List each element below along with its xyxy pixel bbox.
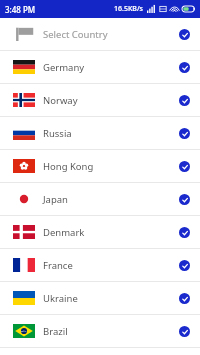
button[interactable]: Hong Kong	[0, 150, 200, 182]
staticText: Japan	[43, 193, 179, 206]
other: Selected Japan	[179, 194, 190, 205]
other: Selected Brazil	[179, 326, 190, 337]
staticText: 16.5KB/s	[114, 4, 144, 14]
staticText: Denmark	[43, 226, 179, 239]
other: Selected Russia	[179, 128, 190, 139]
button[interactable]: Russia	[0, 117, 200, 149]
other: Selected Ukraine	[179, 293, 190, 304]
button[interactable]: Ukraine	[0, 282, 200, 314]
button[interactable]: France	[0, 249, 200, 281]
other: Selected Hong Kong	[179, 161, 190, 172]
other: Selected Select Country	[179, 29, 190, 40]
other: Selected France	[179, 260, 190, 271]
other: Selected Germany	[179, 62, 190, 73]
staticText: France	[43, 259, 179, 272]
staticText: Hong Kong	[43, 160, 179, 173]
button[interactable]: Norway	[0, 84, 200, 116]
button[interactable]: Japan	[0, 183, 200, 215]
other: Selected Norway	[179, 95, 190, 106]
staticText: Germany	[43, 61, 179, 74]
button[interactable]: Germany	[0, 51, 200, 83]
staticText: Brazil	[43, 325, 179, 338]
button[interactable]: Denmark	[0, 216, 200, 248]
staticText: Russia	[43, 127, 179, 140]
button[interactable]: Select Country	[0, 18, 200, 50]
other: Selected Denmark	[179, 227, 190, 238]
staticText: Norway	[43, 94, 179, 107]
staticText: Select Country	[43, 28, 179, 41]
staticText: Ukraine	[43, 292, 179, 305]
staticText: 3:48 PM	[5, 4, 36, 15]
button[interactable]: Brazil	[0, 315, 200, 347]
